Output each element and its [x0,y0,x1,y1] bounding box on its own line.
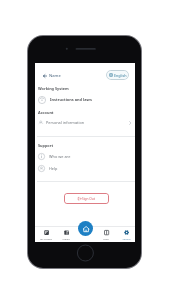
button[interactable]: Help [38,164,132,173]
staticText: Account [38,110,54,115]
button[interactable]: Sign Out [64,193,109,204]
button[interactable]: Wallet [57,228,75,242]
staticText: My Orders [40,237,52,240]
button[interactable]: Back [43,71,61,81]
other: Back [43,74,47,78]
staticText: Name [49,73,61,79]
button[interactable]: Who we are [38,152,132,161]
staticText: Working System [38,86,69,91]
button[interactable]: English [106,70,129,80]
button[interactable]: My Orders [37,228,55,242]
staticText: Support [38,143,54,148]
staticText: Wallet [62,237,70,240]
button[interactable]: Setting [117,228,135,242]
staticText: Who we are [49,154,71,159]
staticText: Instructions and laws [50,97,92,102]
staticText: Help [49,166,58,171]
staticText: English [114,73,127,78]
staticText: Help [103,237,109,240]
button[interactable]: Instructions and laws [38,95,133,104]
staticText: Personal information [46,120,85,125]
staticText: Sign Out [82,197,95,201]
button[interactable]: Home [78,221,93,236]
button[interactable]: Help [97,228,115,242]
button[interactable]: Personal information [38,118,133,127]
staticText: Setting [122,237,131,240]
